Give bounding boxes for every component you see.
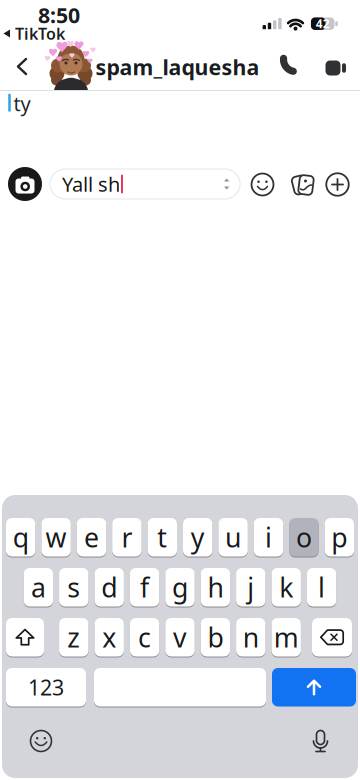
staticText: y [191, 519, 205, 555]
button[interactable]: Camera [8, 167, 42, 201]
button[interactable]: y [183, 517, 212, 557]
staticText: 123 [28, 673, 64, 701]
staticText: v [173, 619, 187, 655]
staticText: m [274, 619, 299, 655]
button[interactable]: x [94, 617, 124, 657]
button[interactable]: t [148, 517, 177, 557]
button[interactable]: Back [15, 57, 29, 76]
staticText: j [247, 569, 254, 605]
staticText: ty [13, 90, 30, 117]
button[interactable]: j [236, 567, 265, 607]
staticText: 42 [316, 16, 330, 32]
staticText: b [207, 619, 223, 655]
button[interactable]: q [6, 517, 35, 557]
button[interactable]: e [77, 517, 106, 557]
button[interactable]: Voice call [277, 57, 298, 78]
button[interactable]: r [112, 517, 142, 557]
staticText: r [121, 519, 132, 555]
staticText: i [265, 519, 272, 555]
button[interactable]: Space [94, 667, 266, 707]
button[interactable]: Send [272, 667, 356, 707]
button[interactable]: Emoji [250, 172, 274, 196]
staticText: z [67, 619, 80, 655]
staticText: h [207, 569, 223, 605]
staticText: x [102, 619, 116, 655]
button[interactable]: u [218, 517, 248, 557]
staticText: TikTok [15, 23, 65, 44]
button[interactable]: a [24, 567, 53, 607]
button[interactable]: g [165, 567, 195, 607]
button[interactable]: Back to TikTok [3, 23, 65, 44]
staticText: u [225, 519, 241, 555]
staticText: o [296, 519, 312, 555]
button[interactable]: Delete [312, 617, 352, 657]
staticText: spam_laquesha [95, 53, 259, 81]
button[interactable]: p [325, 517, 354, 557]
staticText: e [84, 519, 99, 555]
button[interactable]: i [254, 517, 283, 557]
button[interactable]: d [94, 567, 124, 607]
staticText: l [318, 569, 325, 605]
button[interactable]: h [201, 567, 230, 607]
staticText: Yall sh [62, 171, 120, 197]
staticText: p [331, 519, 347, 555]
button[interactable]: s [59, 567, 88, 607]
staticText: n [243, 619, 259, 655]
button[interactable]: o [289, 517, 319, 557]
button[interactable]: w [41, 517, 71, 557]
button[interactable]: n [236, 617, 265, 657]
button[interactable]: b [201, 617, 230, 657]
staticText: w [46, 519, 67, 555]
button[interactable]: f [130, 567, 159, 607]
staticText: s [67, 569, 80, 605]
button[interactable]: m [271, 617, 301, 657]
staticText: g [172, 569, 188, 605]
button[interactable]: Add [325, 172, 349, 196]
button[interactable]: c [130, 617, 159, 657]
button[interactable]: Numbers [6, 667, 86, 707]
button[interactable]: Shift [6, 617, 44, 657]
staticText: k [279, 569, 293, 605]
button[interactable]: v [165, 617, 195, 657]
button[interactable]: k [271, 567, 301, 607]
staticText: f [140, 569, 149, 605]
button[interactable]: z [59, 617, 88, 657]
button[interactable]: Stickers [291, 171, 317, 197]
button[interactable]: Emoji keyboard [30, 730, 52, 752]
staticText: c [138, 619, 151, 655]
button[interactable]: Dictation [312, 729, 328, 752]
button[interactable]: l [307, 567, 336, 607]
staticText: d [101, 569, 117, 605]
staticText: 8:50 [38, 1, 80, 29]
staticText: t [157, 519, 167, 555]
button[interactable]: Video call [322, 59, 350, 77]
staticText: q [13, 519, 29, 555]
staticText: a [31, 569, 46, 605]
